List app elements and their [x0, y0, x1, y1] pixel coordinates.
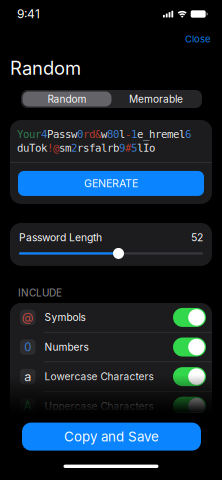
staticText: GENERATE: [84, 177, 138, 190]
button[interactable]: GENERATE: [10, 163, 212, 204]
button[interactable]: Random: [22, 91, 111, 106]
staticText: Your4Passw0rd&w80l-1e_hremel6: [17, 128, 191, 140]
staticText: Numbers: [44, 341, 88, 353]
staticText: 0: [24, 340, 31, 354]
staticText: Close: [185, 33, 211, 45]
staticText: Password Length: [19, 231, 102, 244]
staticText: Numbers: [44, 430, 88, 442]
button[interactable]: @: [10, 303, 212, 332]
staticText: Copy and Save: [64, 428, 159, 445]
button[interactable]: Copy and Save: [22, 423, 201, 451]
staticText: Random: [10, 57, 81, 79]
staticText: Lowercase Characters: [44, 370, 153, 383]
staticText: 52: [191, 231, 203, 244]
button[interactable]: 1: [10, 421, 212, 450]
staticText: a: [24, 369, 31, 384]
staticText: Memorable: [129, 93, 183, 105]
staticText: A: [23, 399, 32, 414]
staticText: Symbols: [44, 311, 85, 324]
staticText: 9:41: [17, 7, 40, 21]
button[interactable]: a: [10, 362, 212, 391]
button[interactable]: Close: [177, 28, 219, 50]
staticText: Random: [47, 93, 86, 105]
staticText: duTok!@sm2rsfalrb9#5lIo: [17, 142, 155, 154]
button[interactable]: Memorable: [111, 91, 200, 106]
staticText: Uppercase Characters: [44, 400, 153, 412]
button[interactable]: A: [10, 392, 212, 421]
staticText: @: [22, 310, 34, 325]
staticText: INCLUDE: [18, 287, 62, 299]
button[interactable]: 0: [10, 332, 212, 361]
